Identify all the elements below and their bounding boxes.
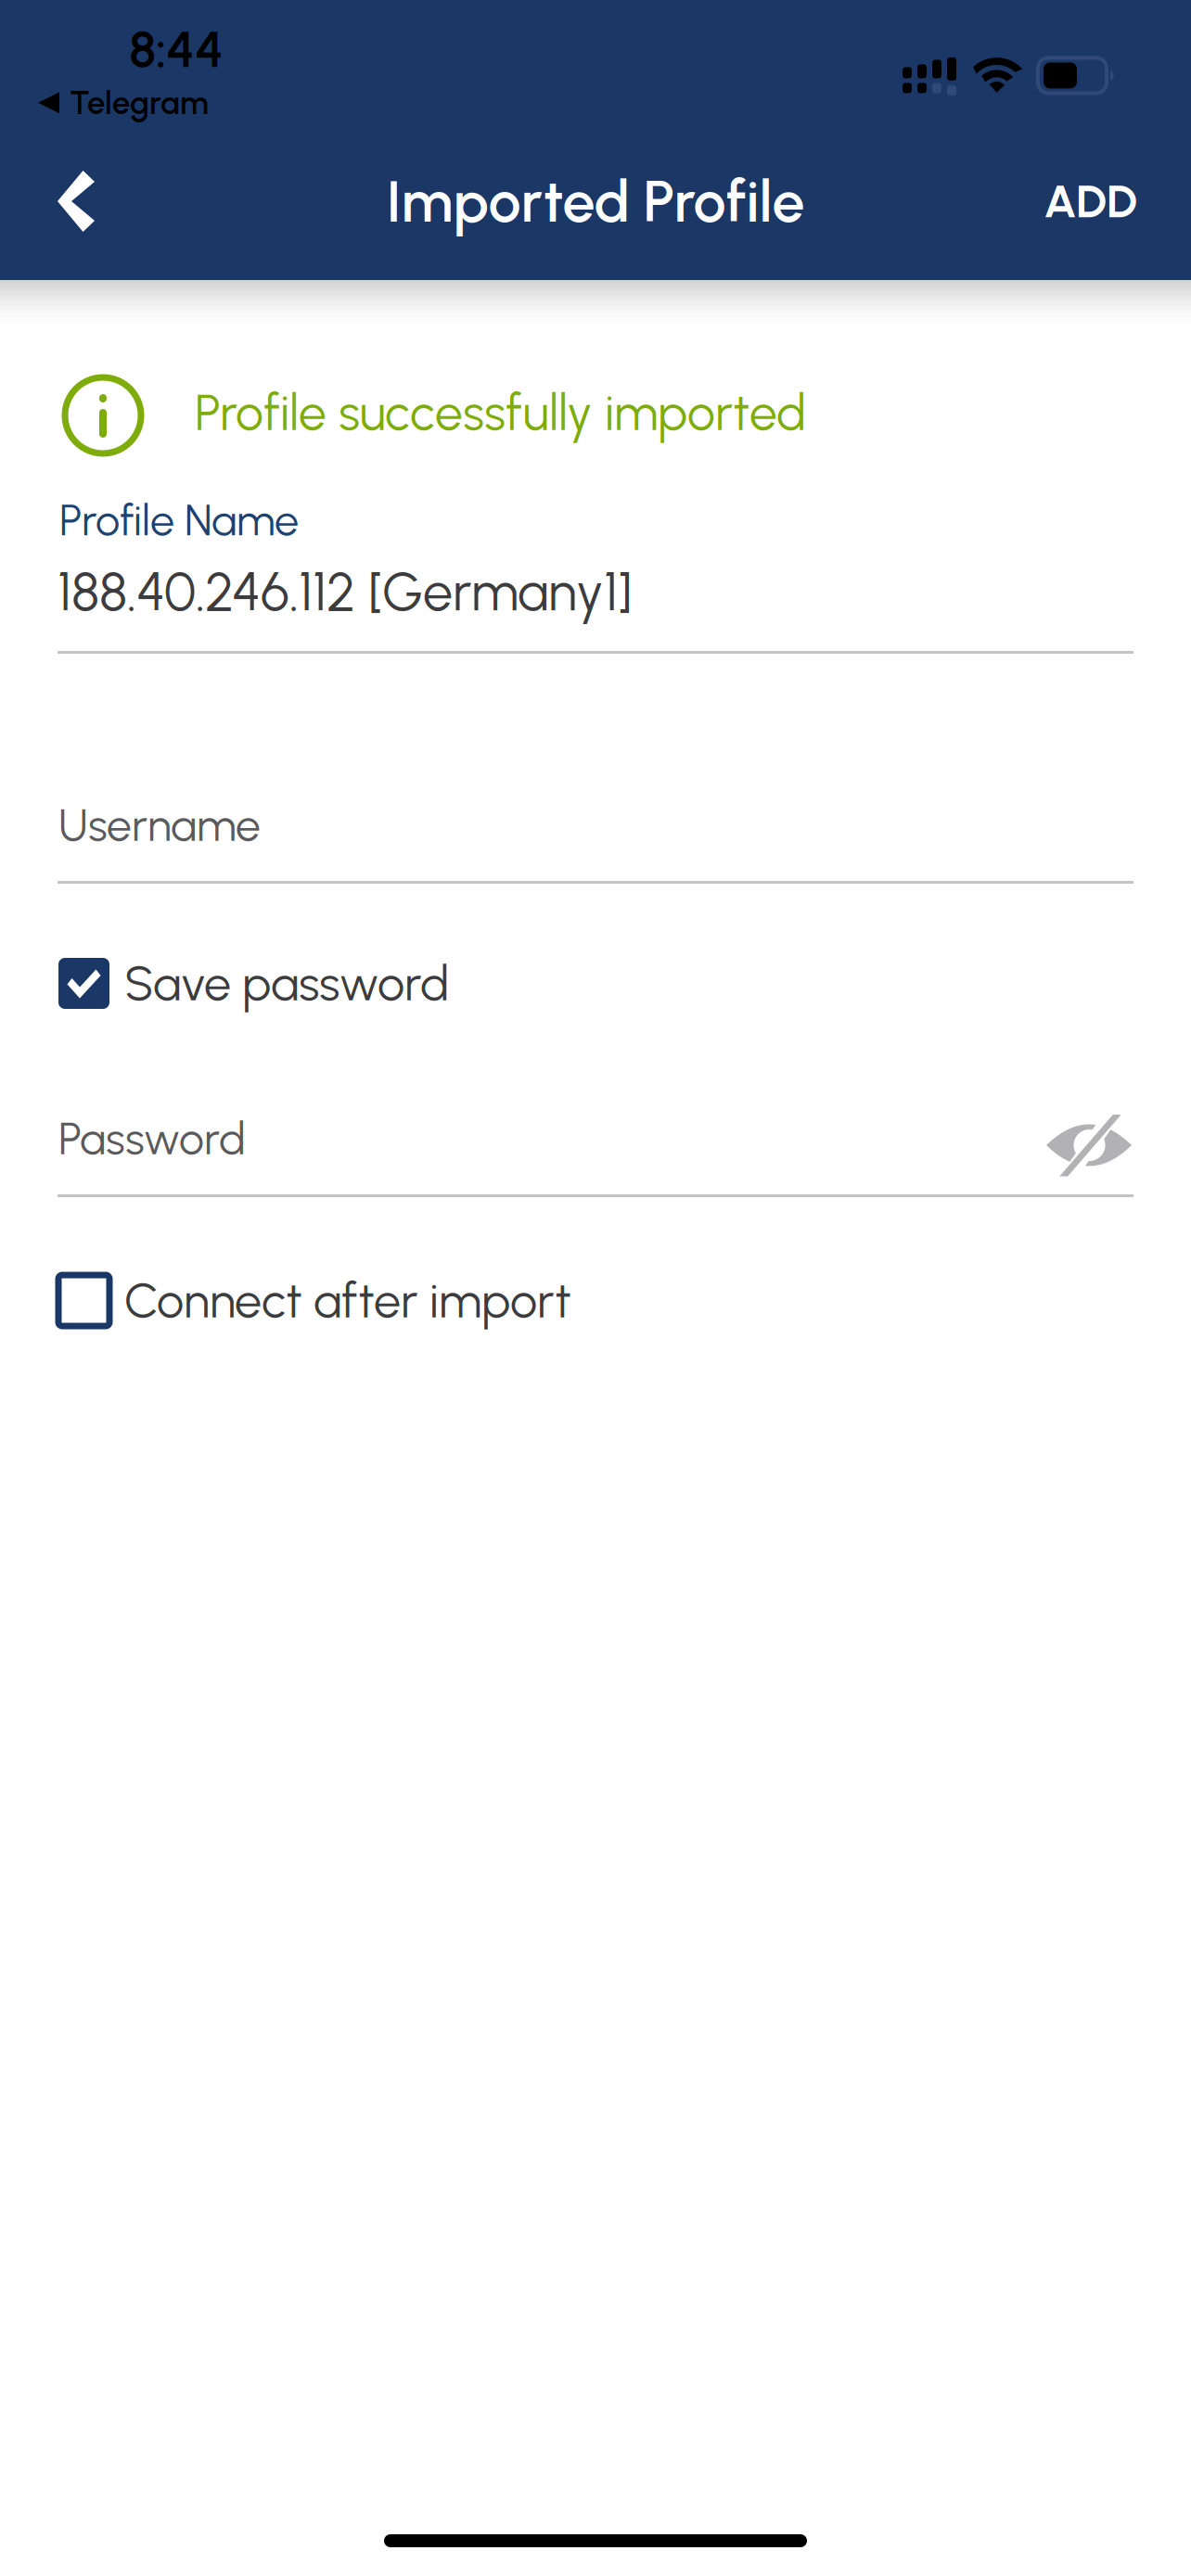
button[interactable]: Show password — [1046, 1124, 1133, 1167]
staticText: Profile Name — [59, 494, 299, 546]
staticText: Imported Profile — [386, 166, 805, 236]
staticText: Username — [58, 799, 261, 852]
staticText: Telegram — [70, 83, 209, 122]
button[interactable]: Back — [0, 141, 137, 261]
staticText: Connect after import — [124, 1272, 571, 1329]
staticText: 8:44 — [129, 19, 224, 80]
button[interactable]: ADD — [1010, 137, 1191, 266]
button[interactable]: Connect after import — [58, 1275, 1191, 1326]
staticText: 188.40.246.112 [Germany1] — [58, 560, 632, 624]
staticText: Password — [58, 1112, 246, 1165]
staticText: Save password — [124, 954, 449, 1012]
staticText: ADD — [1044, 174, 1137, 229]
button[interactable]: Save password — [58, 958, 1191, 1009]
staticText: Profile successfully imported — [195, 383, 806, 442]
